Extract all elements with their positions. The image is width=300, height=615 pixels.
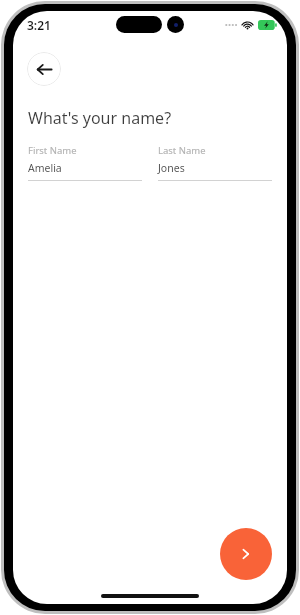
staticText: Jones	[158, 161, 185, 175]
staticText: Amelia	[28, 161, 62, 175]
staticText: Last Name	[158, 144, 206, 157]
staticText: 3:21	[27, 17, 51, 33]
button[interactable]: Next	[220, 528, 272, 580]
button[interactable]: Back	[27, 52, 61, 86]
staticText: What's your name?	[28, 107, 172, 129]
button[interactable]: First Name	[28, 144, 142, 181]
staticText: First Name	[28, 144, 77, 157]
button[interactable]: Last Name	[158, 144, 272, 181]
